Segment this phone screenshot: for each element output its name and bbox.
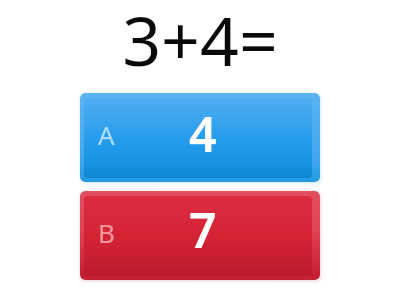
- button[interactable]: Answer B: 7: [80, 191, 320, 280]
- button[interactable]: Answer A: 4: [80, 93, 320, 182]
- staticText: 3+4=: [0, 0, 400, 86]
- staticText: A: [98, 117, 115, 152]
- staticText: B: [98, 215, 115, 250]
- staticText: 4: [189, 101, 217, 166]
- staticText: 7: [189, 197, 217, 262]
